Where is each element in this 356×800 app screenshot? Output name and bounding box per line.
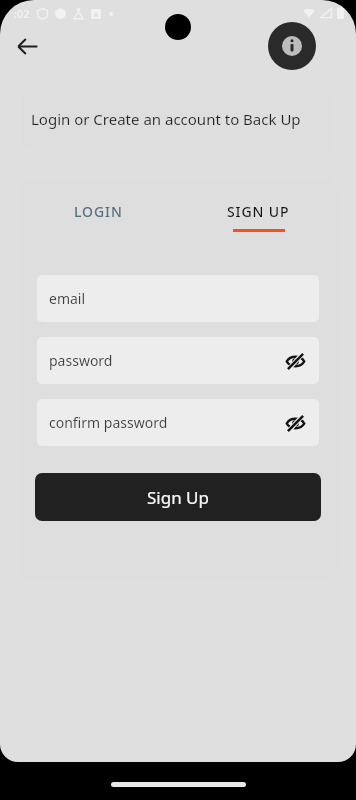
button[interactable]: email [37, 275, 319, 322]
staticText: SIGN UP [227, 202, 290, 221]
button[interactable]: SIGN UP [178, 202, 338, 238]
staticText: LOGIN [74, 202, 123, 221]
staticText: confirm password [49, 413, 168, 432]
staticText: :02 [14, 6, 30, 21]
staticText: email [49, 289, 86, 308]
button[interactable]: Toggle password visibility [279, 407, 311, 439]
button[interactable]: confirm password [37, 399, 319, 446]
button[interactable]: Login or Create an account to Back Up [21, 88, 335, 150]
button[interactable]: Toggle password visibility [279, 345, 311, 377]
staticText: Sign Up [147, 486, 209, 509]
staticText: password [49, 351, 113, 370]
button[interactable]: Sign Up [35, 473, 321, 521]
button[interactable]: Info [268, 22, 316, 70]
button[interactable]: LOGIN [18, 202, 178, 238]
button[interactable]: Back [6, 25, 48, 67]
staticText: Login or Create an account to Back Up [31, 109, 301, 129]
button[interactable]: password [37, 337, 319, 384]
